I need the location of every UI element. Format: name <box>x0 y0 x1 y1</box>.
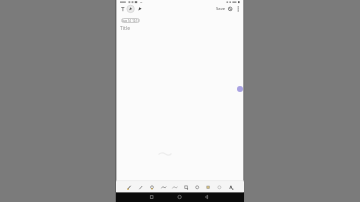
button[interactable] <box>182 182 191 192</box>
button[interactable] <box>148 182 157 192</box>
button[interactable] <box>136 182 145 192</box>
button[interactable] <box>237 86 243 92</box>
staticText: Title <box>120 25 130 32</box>
button[interactable] <box>200 192 214 202</box>
button[interactable] <box>136 4 145 14</box>
button[interactable] <box>193 182 202 192</box>
button[interactable] <box>125 182 134 192</box>
button[interactable]: Save <box>216 6 226 12</box>
button[interactable] <box>226 4 234 14</box>
button[interactable] <box>205 182 214 192</box>
button[interactable] <box>127 4 135 14</box>
staticText: Aug 14, 12:13 <box>122 19 140 23</box>
button[interactable] <box>228 182 237 192</box>
button[interactable]: Aug 14, 12:13 <box>121 18 140 23</box>
button[interactable] <box>216 182 225 192</box>
button[interactable] <box>144 192 158 202</box>
button[interactable] <box>119 4 128 14</box>
button[interactable] <box>159 182 168 192</box>
button[interactable] <box>235 4 242 14</box>
button[interactable] <box>173 192 187 202</box>
button[interactable] <box>171 182 180 192</box>
